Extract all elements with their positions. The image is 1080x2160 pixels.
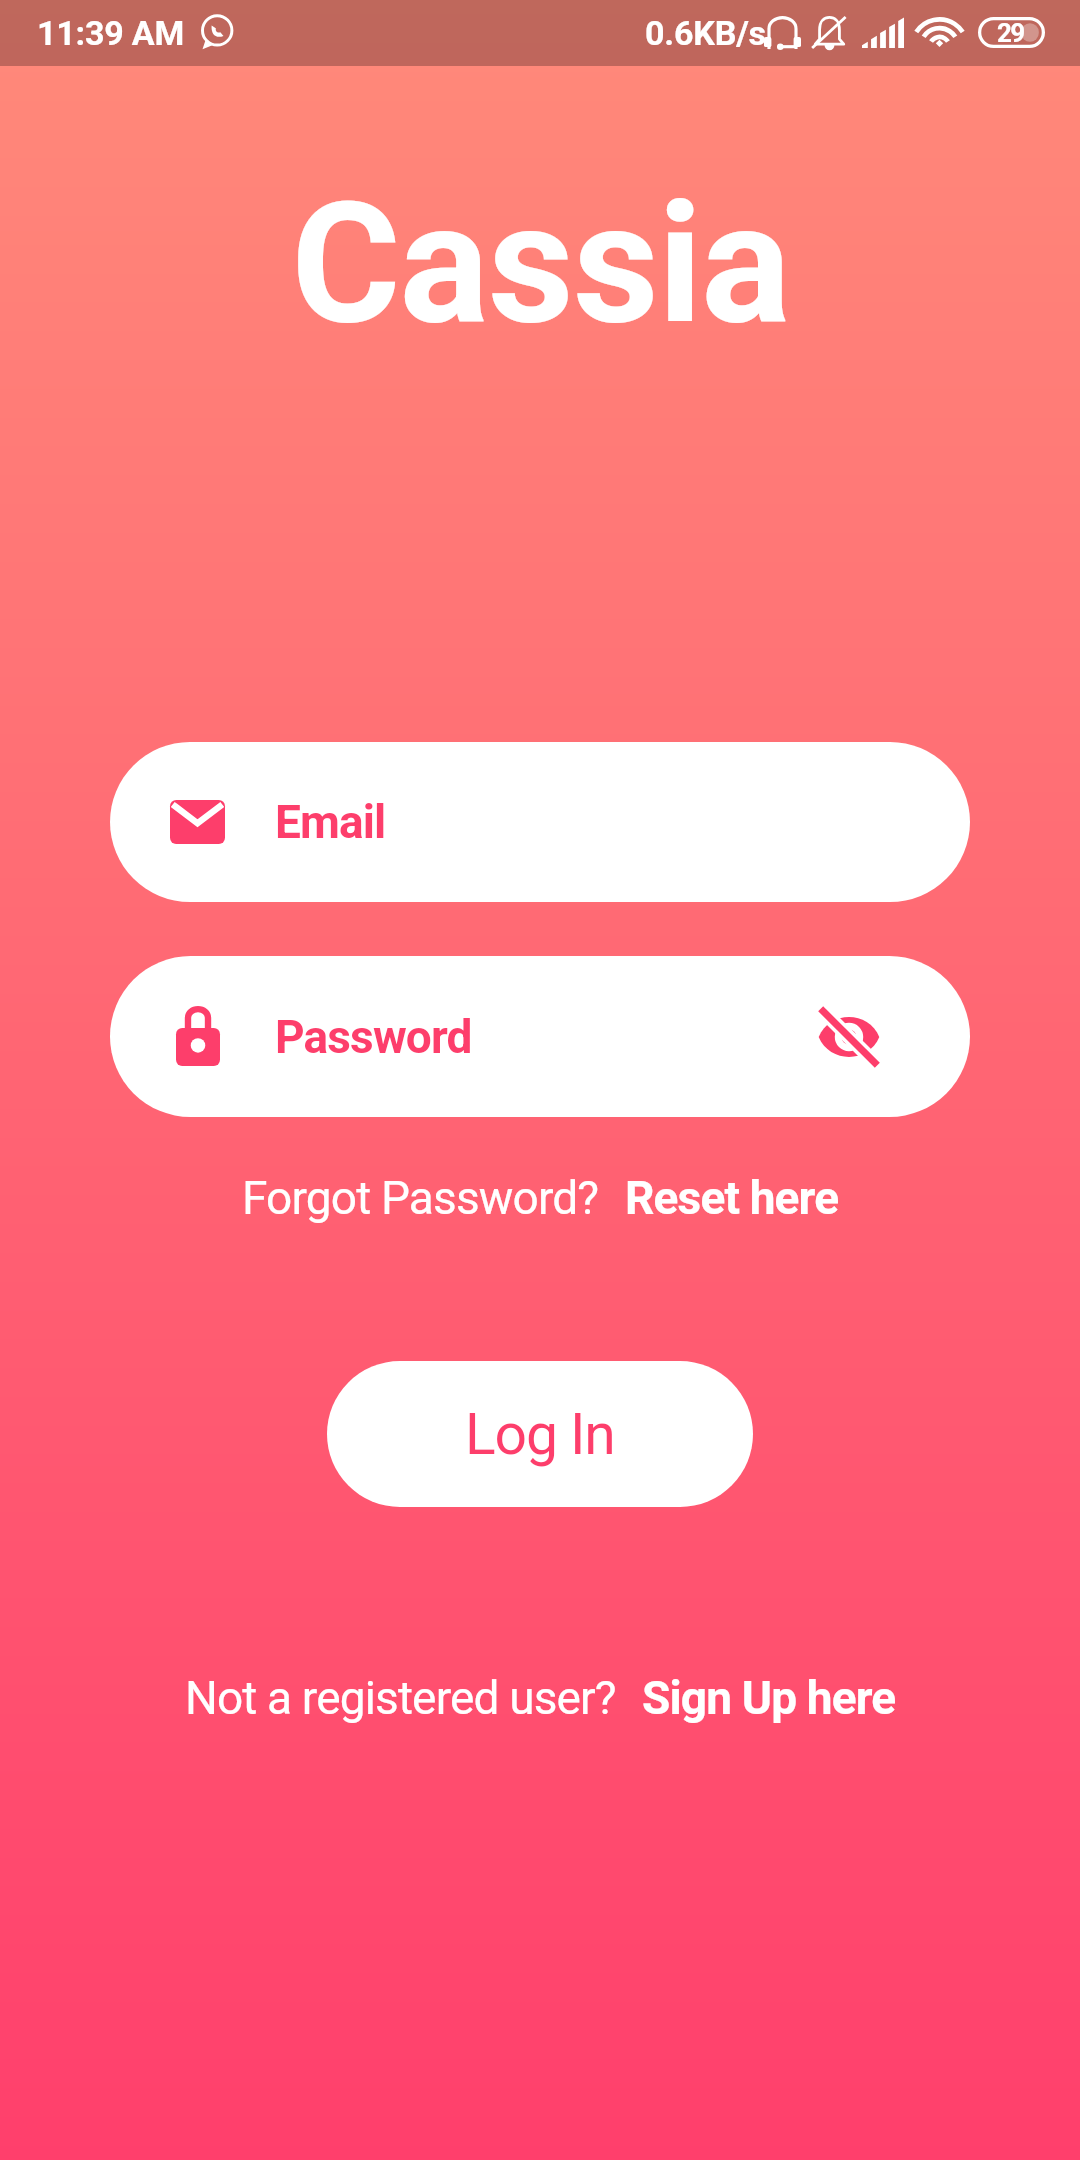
button[interactable]: Reset here [625, 1171, 839, 1225]
staticText: 0.6KB/s [645, 13, 766, 53]
staticText: Email [275, 795, 386, 849]
staticText: Cassia [291, 166, 790, 362]
button[interactable]: Password [110, 956, 970, 1117]
staticText: Not a registered user? [185, 1671, 616, 1725]
button[interactable]: Log In [327, 1361, 753, 1507]
staticText: 11:39 AM [37, 13, 185, 53]
staticText: Sign Up here [642, 1671, 896, 1725]
staticText: 29 [997, 18, 1024, 48]
staticText: Reset here [625, 1171, 839, 1225]
button[interactable]: Sign Up here [642, 1671, 896, 1725]
staticText: Password [275, 1010, 472, 1064]
button[interactable]: Email [110, 742, 970, 902]
staticText: Forgot Password? [242, 1171, 599, 1225]
button[interactable]: Show password [794, 982, 904, 1092]
staticText: Log In [465, 1401, 615, 1468]
